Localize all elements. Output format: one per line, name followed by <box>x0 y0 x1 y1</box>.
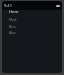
staticText: Boo <box>9 24 16 29</box>
staticText: Hom <box>9 9 19 14</box>
staticText: 9:41 <box>4 3 12 8</box>
button[interactable]: Med <box>2 16 62 22</box>
button[interactable]: Boo <box>2 23 62 29</box>
staticText: Med <box>9 17 17 22</box>
staticText: Abo <box>9 30 16 35</box>
button[interactable]: Abo <box>2 29 62 35</box>
button[interactable]: Hom <box>2 8 62 14</box>
